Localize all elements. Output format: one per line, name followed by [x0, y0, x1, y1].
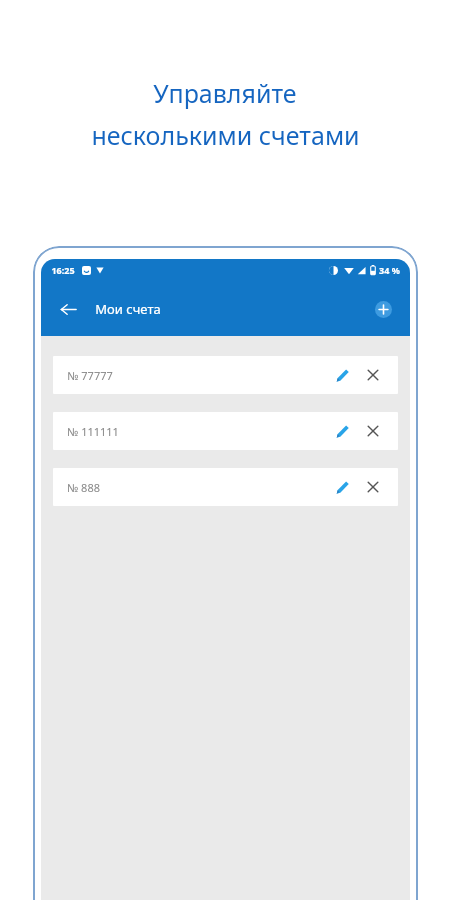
- button[interactable]: № 888: [53, 468, 398, 506]
- staticText: № 77777: [67, 368, 113, 383]
- button[interactable]: Удалить: [362, 476, 384, 498]
- staticText: № 888: [67, 480, 100, 495]
- staticText: несколькими счетами: [91, 118, 360, 152]
- staticText: 16:25: [51, 264, 75, 276]
- button[interactable]: Редактировать: [331, 364, 353, 386]
- staticText: № 111111: [67, 424, 119, 439]
- button[interactable]: Редактировать: [331, 476, 353, 498]
- staticText: 34 %: [379, 264, 400, 276]
- staticText: Мои счета: [95, 300, 161, 318]
- button[interactable]: № 77777: [53, 356, 398, 394]
- button[interactable]: № 111111: [53, 412, 398, 450]
- button[interactable]: Удалить: [362, 420, 384, 442]
- button[interactable]: Удалить: [362, 364, 384, 386]
- button[interactable]: Добавить счёт: [370, 296, 396, 322]
- button[interactable]: Назад: [53, 294, 83, 324]
- button[interactable]: Редактировать: [331, 420, 353, 442]
- staticText: Управляйте: [153, 76, 297, 110]
